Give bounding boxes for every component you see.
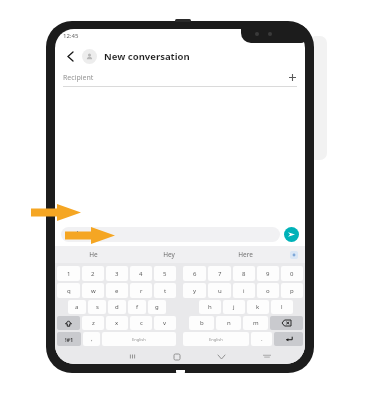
button[interactable]: Shift (57, 316, 80, 330)
staticText: l (281, 303, 283, 311)
staticText: New conversation (104, 50, 190, 63)
staticText: v (163, 319, 167, 327)
button[interactable]: Recent apps (110, 349, 154, 364)
button[interactable]: x (106, 316, 128, 330)
button[interactable]: 5 (154, 266, 176, 281)
button[interactable]: c (130, 316, 152, 330)
staticText: j (233, 303, 235, 311)
button[interactable]: Enter (274, 332, 303, 346)
staticText: n (227, 319, 231, 327)
button[interactable]: i (233, 283, 255, 298)
button[interactable]: He (61, 227, 280, 242)
staticText: 9 (266, 270, 270, 278)
button[interactable]: 4 (130, 266, 152, 281)
button[interactable]: 2 (82, 266, 104, 281)
staticText: Hey (163, 250, 175, 259)
button[interactable]: Backspace (270, 316, 303, 330)
button[interactable]: f (128, 300, 146, 314)
button[interactable]: h (199, 300, 221, 314)
staticText: g (155, 303, 159, 311)
button[interactable]: j (223, 300, 245, 314)
staticText: 4 (139, 270, 143, 278)
button[interactable]: e (106, 283, 128, 298)
staticText: , (91, 335, 93, 343)
button[interactable]: English (102, 332, 176, 346)
staticText: English (209, 337, 223, 342)
button[interactable]: w (82, 283, 104, 298)
staticText: q (67, 287, 71, 295)
button[interactable]: , (83, 332, 100, 346)
button[interactable]: Back (61, 47, 79, 65)
button[interactable]: u (208, 283, 231, 298)
staticText: i (243, 287, 245, 295)
staticText: o (266, 287, 270, 295)
staticText: . (261, 335, 263, 343)
staticText: !#1 (65, 336, 74, 343)
button[interactable]: Send (284, 227, 299, 242)
button[interactable]: m (243, 316, 268, 330)
staticText: m (253, 319, 259, 327)
staticText: y (193, 287, 197, 295)
staticText: 2 (91, 270, 95, 278)
button[interactable]: z (82, 316, 104, 330)
staticText: a (75, 303, 79, 311)
staticText: English (132, 337, 146, 342)
staticText: t (164, 287, 167, 295)
staticText: z (92, 319, 95, 327)
staticText: He (89, 250, 98, 259)
button[interactable]: Back (199, 349, 244, 364)
button[interactable]: b (189, 316, 214, 330)
staticText: 5 (163, 270, 167, 278)
button[interactable]: Home (154, 349, 199, 364)
staticText: e (115, 287, 119, 295)
staticText: 0 (290, 270, 294, 278)
staticText: r (140, 287, 143, 295)
staticText: w (91, 287, 96, 295)
staticText: d (115, 303, 119, 311)
button[interactable]: g (148, 300, 166, 314)
button[interactable]: . (251, 332, 272, 346)
button[interactable]: Here (207, 246, 283, 263)
button[interactable]: 7 (208, 266, 231, 281)
button[interactable]: 6 (183, 266, 206, 281)
button[interactable]: He (55, 246, 131, 263)
staticText: p (290, 287, 294, 295)
staticText: 3 (115, 270, 119, 278)
button[interactable]: k (247, 300, 269, 314)
staticText: s (96, 303, 99, 311)
button[interactable]: s (88, 300, 106, 314)
staticText: f (136, 303, 139, 311)
button[interactable]: 8 (233, 266, 255, 281)
staticText: Here (238, 250, 253, 259)
button[interactable]: y (183, 283, 206, 298)
button[interactable]: Hey (131, 246, 207, 263)
button[interactable]: Contact (82, 49, 97, 64)
button[interactable]: English (183, 332, 249, 346)
button[interactable]: 3 (106, 266, 128, 281)
button[interactable]: 0 (281, 266, 303, 281)
staticText: 7 (218, 270, 222, 278)
button[interactable]: o (257, 283, 279, 298)
button[interactable]: n (216, 316, 241, 330)
staticText: 6 (193, 270, 197, 278)
button[interactable]: l (271, 300, 293, 314)
button[interactable]: 1 (57, 266, 80, 281)
button[interactable]: v (154, 316, 176, 330)
staticText: c (140, 319, 143, 327)
button[interactable]: t (154, 283, 176, 298)
button[interactable]: Expand suggestions (283, 246, 305, 263)
staticText: k (256, 303, 260, 311)
staticText: u (218, 287, 222, 295)
button[interactable]: d (108, 300, 126, 314)
staticText: h (208, 303, 212, 311)
button[interactable]: 9 (257, 266, 279, 281)
button[interactable]: q (57, 283, 80, 298)
button[interactable]: r (130, 283, 152, 298)
button[interactable]: Add recipient (286, 71, 299, 84)
button[interactable]: Hide keyboard (244, 349, 289, 364)
button[interactable]: a (68, 300, 86, 314)
staticText: 1 (67, 270, 71, 278)
staticText: Recipient (63, 73, 94, 83)
button[interactable]: Symbols (57, 332, 81, 346)
button[interactable]: p (281, 283, 303, 298)
